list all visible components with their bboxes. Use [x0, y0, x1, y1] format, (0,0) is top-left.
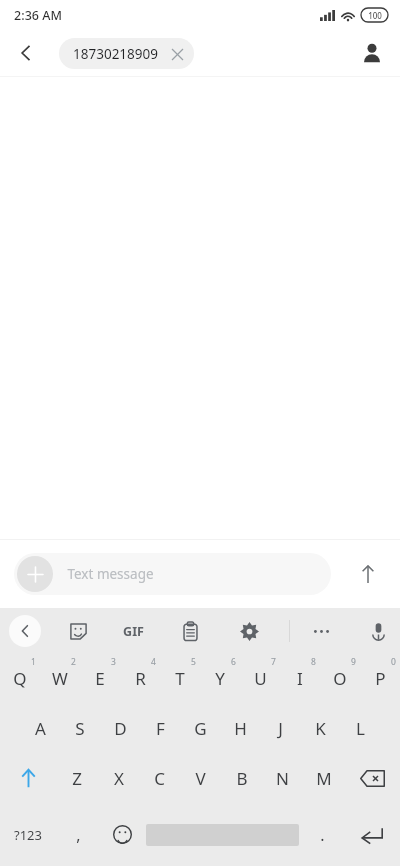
- staticText: 4: [151, 656, 156, 668]
- other: Settings: [240, 622, 259, 641]
- staticText: GIF: [123, 623, 144, 640]
- button[interactable]: GIF: [113, 611, 153, 651]
- other: Stickers: [69, 622, 88, 641]
- staticText: C: [154, 767, 165, 790]
- staticText: T: [175, 667, 185, 690]
- button[interactable]: U: [240, 653, 280, 703]
- button[interactable]: Shift: [0, 753, 56, 803]
- button[interactable]: S: [60, 703, 100, 753]
- button[interactable]: G: [180, 703, 220, 753]
- button[interactable]: P: [360, 653, 400, 703]
- staticText: X: [114, 767, 124, 790]
- staticText: I: [297, 667, 303, 690]
- button[interactable]: Clipboard: [170, 611, 210, 651]
- button[interactable]: R: [120, 653, 160, 703]
- staticText: A: [35, 717, 46, 740]
- button[interactable]: K: [300, 703, 340, 753]
- button[interactable]: H: [220, 703, 260, 753]
- staticText: U: [254, 667, 267, 690]
- staticText: 18730218909: [73, 45, 158, 63]
- staticText: 9: [351, 656, 356, 668]
- staticText: J: [278, 717, 283, 740]
- staticText: 1: [31, 656, 36, 668]
- button[interactable]: A: [20, 703, 60, 753]
- staticText: E: [95, 667, 105, 690]
- button[interactable]: .: [300, 803, 344, 866]
- staticText: Y: [215, 667, 225, 690]
- other: Clipboard: [181, 622, 200, 641]
- staticText: D: [114, 717, 127, 740]
- staticText: P: [375, 667, 386, 690]
- button[interactable]: Send: [348, 554, 388, 594]
- button[interactable]: Z: [56, 753, 98, 803]
- button[interactable]: D: [100, 703, 140, 753]
- staticText: Q: [13, 667, 27, 690]
- staticText: 5: [191, 656, 196, 668]
- button[interactable]: Back: [6, 33, 46, 73]
- staticText: 3: [111, 656, 116, 668]
- staticText: G: [194, 717, 207, 740]
- staticText: 2:36 AM: [14, 7, 62, 24]
- staticText: ?123: [14, 826, 42, 844]
- other: More options: [312, 622, 331, 641]
- staticText: ,: [76, 824, 81, 846]
- button[interactable]: T: [160, 653, 200, 703]
- button[interactable]: I: [280, 653, 320, 703]
- button[interactable]: Settings: [229, 611, 269, 651]
- button[interactable]: Contact: [352, 33, 392, 73]
- staticText: 7: [271, 656, 276, 668]
- button[interactable]: Emoji: [100, 803, 144, 866]
- button[interactable]: Y: [200, 653, 240, 703]
- staticText: L: [356, 717, 365, 740]
- staticText: K: [315, 717, 326, 740]
- staticText: Text message: [67, 565, 154, 583]
- button[interactable]: J: [260, 703, 300, 753]
- staticText: 0: [391, 656, 396, 668]
- staticText: .: [320, 824, 325, 846]
- staticText: S: [75, 717, 85, 740]
- button[interactable]: Enter: [344, 803, 400, 866]
- staticText: 8: [311, 656, 316, 668]
- button[interactable]: V: [180, 753, 221, 803]
- staticText: 2: [71, 656, 76, 668]
- staticText: V: [195, 767, 206, 790]
- button[interactable]: Collapse toolbar: [9, 615, 41, 647]
- staticText: O: [333, 667, 347, 690]
- staticText: N: [276, 767, 289, 790]
- staticText: H: [234, 717, 247, 740]
- button[interactable]: E: [80, 653, 120, 703]
- staticText: 6: [231, 656, 236, 668]
- staticText: Z: [72, 767, 82, 790]
- staticText: R: [135, 667, 146, 690]
- button[interactable]: B: [221, 753, 262, 803]
- staticText: M: [316, 767, 332, 790]
- button[interactable]: Backspace: [344, 753, 400, 803]
- button[interactable]: More options: [301, 611, 341, 651]
- button[interactable]: W: [40, 653, 80, 703]
- button[interactable]: [144, 803, 300, 866]
- button[interactable]: Voice input: [358, 611, 398, 651]
- button[interactable]: X: [98, 753, 139, 803]
- button[interactable]: Stickers: [58, 611, 98, 651]
- button[interactable]: Attach: [14, 553, 331, 595]
- button[interactable]: O: [320, 653, 360, 703]
- button[interactable]: F: [140, 703, 180, 753]
- staticText: B: [236, 767, 248, 790]
- button[interactable]: Attach: [17, 556, 53, 592]
- button[interactable]: C: [139, 753, 180, 803]
- button[interactable]: ?123: [0, 803, 56, 866]
- button[interactable]: Q: [0, 653, 40, 703]
- button[interactable]: 18730218909: [59, 38, 194, 69]
- staticText: 100: [368, 10, 382, 21]
- button[interactable]: Remove recipient: [166, 43, 188, 65]
- other: Voice input: [369, 622, 388, 641]
- staticText: W: [52, 667, 68, 690]
- button[interactable]: N: [262, 753, 303, 803]
- staticText: F: [156, 717, 165, 740]
- button[interactable]: ,: [56, 803, 100, 866]
- button[interactable]: M: [303, 753, 344, 803]
- button[interactable]: L: [340, 703, 380, 753]
